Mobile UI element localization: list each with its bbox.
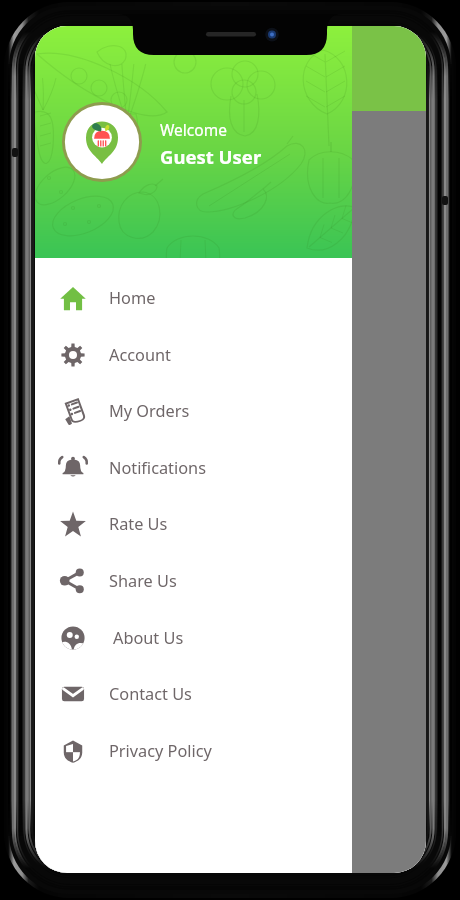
staticText: Welcome bbox=[160, 119, 227, 140]
button[interactable]: Share Us bbox=[35, 552, 352, 609]
staticText: Rate Us bbox=[109, 513, 168, 535]
staticText: Account bbox=[109, 344, 171, 366]
staticText: About Us bbox=[113, 627, 184, 649]
button[interactable]: Rate Us bbox=[35, 495, 352, 552]
button[interactable]: About Us bbox=[35, 609, 352, 666]
button[interactable]: Account bbox=[35, 326, 352, 383]
staticText: Notifications bbox=[109, 457, 206, 479]
staticText: Home bbox=[109, 287, 156, 309]
button[interactable]: Privacy Policy bbox=[35, 722, 352, 779]
staticText: My Orders bbox=[109, 400, 190, 422]
button[interactable]: Home bbox=[35, 269, 352, 326]
staticText: Guest User bbox=[160, 144, 262, 169]
button[interactable]: My Orders bbox=[35, 382, 352, 439]
staticText: Share Us bbox=[109, 570, 177, 592]
button[interactable]: Notifications bbox=[35, 439, 352, 496]
button[interactable]: Contact Us bbox=[35, 665, 352, 722]
staticText: Privacy Policy bbox=[109, 740, 212, 762]
staticText: Contact Us bbox=[109, 683, 192, 705]
